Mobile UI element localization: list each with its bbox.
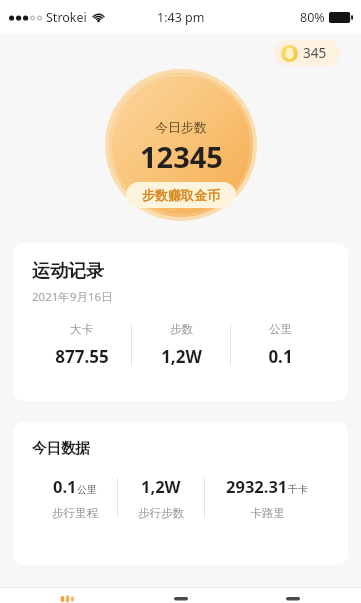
staticText: 运动记录: [32, 260, 104, 283]
staticText: 步行里程: [52, 506, 98, 520]
staticText: 公里: [77, 483, 97, 496]
staticText: 千卡: [288, 483, 308, 496]
staticText: 大卡: [70, 322, 93, 336]
button[interactable]: 今日步数 12345: [105, 69, 257, 221]
button[interactable]: 今日数据: [13, 422, 348, 565]
staticText: 卡路里: [250, 506, 285, 520]
button[interactable]: 345: [274, 40, 340, 66]
staticText: 步行步数: [138, 506, 184, 520]
staticText: 1,2W: [141, 475, 181, 497]
staticText: 80%: [300, 9, 325, 26]
staticText: Strokei: [46, 9, 87, 26]
staticText: 2932.31: [226, 475, 288, 497]
staticText: 公里: [269, 322, 292, 336]
staticText: 今日数据: [32, 439, 90, 457]
staticText: 345: [303, 44, 327, 62]
staticText: 2021年9月16日: [32, 289, 113, 305]
staticText: 877.55: [55, 345, 109, 368]
button[interactable]: 运动记录: [13, 243, 348, 401]
staticText: 1,2W: [161, 345, 202, 368]
staticText: 12345: [140, 137, 223, 176]
staticText: 1:43 pm: [157, 9, 205, 26]
button[interactable]: 步数: [24, 588, 112, 603]
button[interactable]: 排行: [137, 588, 225, 603]
button[interactable]: 步数赚取金币: [126, 182, 236, 208]
staticText: 0.1: [268, 345, 293, 368]
staticText: 步数赚取金币: [142, 187, 220, 203]
button[interactable]: 我的: [249, 588, 337, 603]
staticText: 步数: [170, 322, 193, 336]
staticText: 0.1: [53, 475, 77, 497]
staticText: 今日步数: [155, 119, 207, 135]
